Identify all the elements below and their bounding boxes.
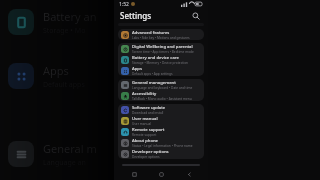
button[interactable]: Apps bbox=[118, 65, 204, 76]
staticText: Apps bbox=[132, 66, 142, 72]
staticText: Status • Legal information • Phone name bbox=[132, 144, 193, 148]
staticText: Remote support bbox=[132, 133, 157, 137]
staticText: Software update bbox=[132, 105, 166, 111]
staticText: Battery an bbox=[43, 9, 97, 24]
button[interactable]: Back bbox=[181, 168, 197, 180]
button[interactable]: Home bbox=[153, 168, 169, 180]
button[interactable]: Remote support bbox=[118, 126, 204, 137]
staticText: Default apps • App settings bbox=[132, 72, 173, 76]
staticText: General m bbox=[43, 141, 97, 156]
button[interactable]: Search settings bbox=[190, 10, 202, 22]
staticText: Developer options bbox=[132, 155, 160, 159]
staticText: Labs • Side key • Motions and gestures bbox=[132, 36, 190, 40]
staticText: Advanced features bbox=[132, 30, 170, 36]
staticText: Storage • Memory • Device protection bbox=[132, 61, 189, 65]
staticText: Settings bbox=[120, 10, 152, 21]
button[interactable]: Digital Wellbeing and parental controls bbox=[118, 43, 204, 54]
staticText: Accessibility bbox=[132, 91, 157, 97]
button[interactable]: Recent apps bbox=[126, 168, 142, 180]
staticText: User manual bbox=[132, 116, 158, 122]
staticText: Battery and device care bbox=[132, 55, 179, 61]
button[interactable]: Software update bbox=[118, 104, 204, 115]
button[interactable]: About phone bbox=[118, 137, 204, 148]
staticText: About phone bbox=[132, 138, 159, 144]
staticText: 1:52 bbox=[119, 1, 129, 8]
button[interactable]: Accessibility bbox=[118, 90, 204, 101]
staticText: TalkBack • Mono audio • Assistant menu bbox=[132, 97, 192, 101]
staticText: Download and install bbox=[132, 111, 164, 115]
button[interactable]: Battery and device care bbox=[118, 54, 204, 65]
staticText: Developer options bbox=[132, 149, 169, 155]
staticText: Screen time • App timers • Bedtime mode bbox=[132, 50, 194, 54]
staticText: General management bbox=[132, 80, 176, 86]
button[interactable]: Developer options bbox=[118, 148, 204, 159]
staticText: Apps bbox=[43, 63, 69, 78]
staticText: User manual bbox=[132, 122, 152, 126]
staticText: Remote support bbox=[132, 127, 165, 133]
button[interactable]: General management bbox=[118, 79, 204, 90]
staticText: Language and keyboard • Date and time bbox=[132, 86, 193, 90]
staticText: Digital Wellbeing and parental controls bbox=[132, 44, 201, 50]
button[interactable]: User manual bbox=[118, 115, 204, 126]
button[interactable]: Advanced features bbox=[118, 29, 204, 40]
